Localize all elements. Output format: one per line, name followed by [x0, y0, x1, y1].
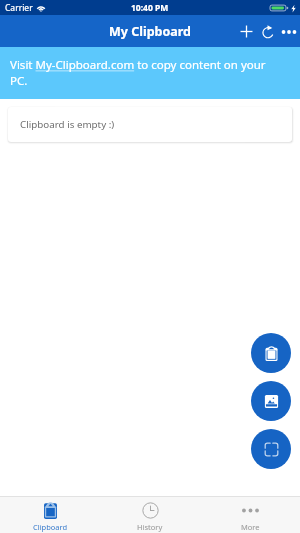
button[interactable]: Clipboard is empty :): [8, 107, 292, 142]
button[interactable]: Pick image: [251, 381, 291, 421]
button[interactable]: More options: [278, 21, 299, 42]
button[interactable]: Visit My-Clipboard.com to copy content o…: [0, 47, 300, 99]
staticText: More: [241, 522, 260, 532]
staticText: 10:40 PM: [131, 2, 169, 14]
staticText: Clipboard: [33, 522, 68, 532]
staticText: History: [137, 522, 163, 532]
button[interactable]: More: [200, 497, 300, 533]
button[interactable]: History: [100, 497, 200, 533]
button[interactable]: Scan: [251, 429, 291, 469]
button[interactable]: Refresh: [257, 21, 278, 42]
staticText: Clipboard is empty :): [20, 118, 115, 131]
staticText: Visit My-Clipboard.com to copy content o…: [10, 57, 272, 88]
button[interactable]: Copy to clipboard: [251, 333, 291, 373]
staticText: My Clipboard: [109, 23, 192, 40]
button[interactable]: Add: [236, 21, 257, 42]
staticText: Carrier: [5, 2, 33, 14]
button[interactable]: Clipboard: [0, 497, 100, 533]
